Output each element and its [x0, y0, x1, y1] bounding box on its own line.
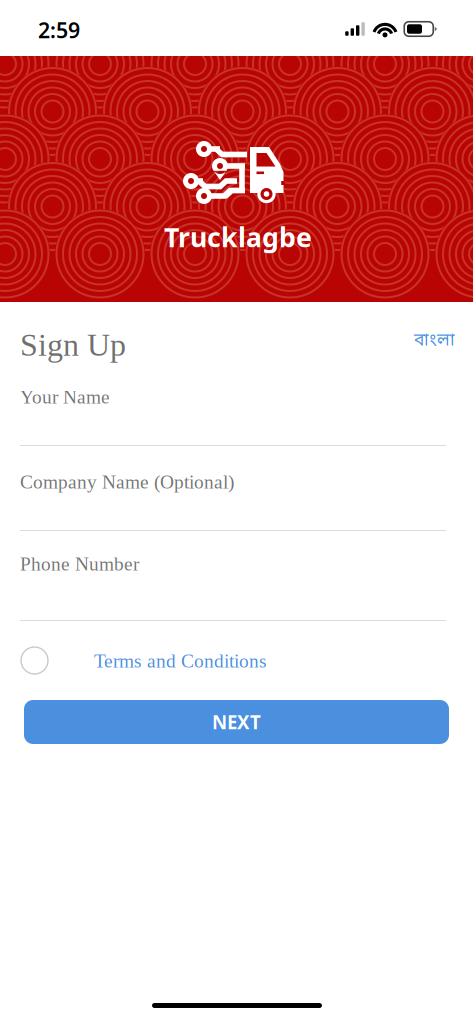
staticText: Sign Up — [20, 327, 126, 363]
staticText: Company Name (Optional) — [20, 471, 234, 493]
button[interactable]: Terms and Conditions — [94, 650, 274, 672]
staticText: Phone Number — [20, 553, 139, 575]
button[interactable]: NEXT — [24, 700, 449, 744]
staticText: Terms and Conditions — [94, 650, 267, 672]
staticText: NEXT — [212, 710, 261, 734]
button[interactable]: বাংলা — [414, 330, 460, 352]
staticText: বাংলা — [414, 329, 455, 352]
button[interactable]: Accept terms and conditions — [21, 647, 48, 674]
staticText: 2:59 — [38, 16, 80, 44]
staticText: Trucklagbe — [164, 219, 312, 255]
staticText: Your Name — [20, 386, 110, 408]
